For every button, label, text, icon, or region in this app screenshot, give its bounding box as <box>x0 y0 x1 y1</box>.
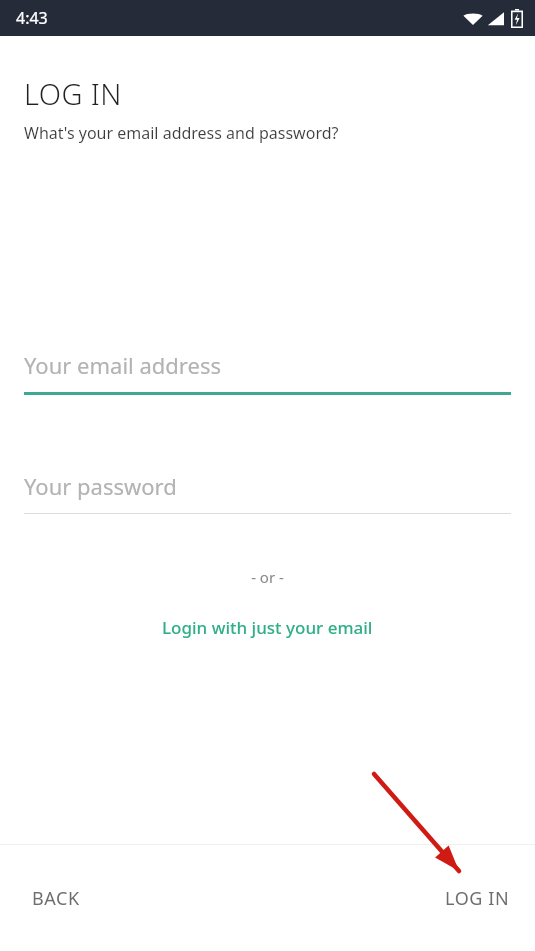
staticText: BACK <box>32 886 80 911</box>
staticText: What's your email address and password? <box>24 122 339 144</box>
staticText: Your password <box>24 471 177 501</box>
button[interactable]: BACK <box>0 872 112 925</box>
staticText: Login with just your email <box>162 616 373 639</box>
staticText: - or - <box>0 567 535 587</box>
button[interactable]: Your password <box>24 471 511 514</box>
staticText: LOG IN <box>24 74 122 113</box>
button[interactable]: LOG IN <box>420 872 535 925</box>
staticText: LOG IN <box>445 886 510 911</box>
staticText: 4:43 <box>16 7 48 29</box>
button[interactable]: Your email address <box>24 350 511 395</box>
staticText: Your email address <box>24 350 221 380</box>
button[interactable]: Login with just your email <box>0 610 535 645</box>
